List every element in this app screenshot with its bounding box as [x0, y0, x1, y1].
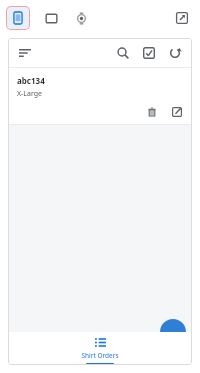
staticText: abc134	[17, 75, 45, 86]
button[interactable]: Phone device	[7, 7, 29, 29]
staticText: Shirt Orders	[81, 351, 119, 360]
button[interactable]: Tablet device	[40, 7, 62, 29]
button[interactable]: Delete	[143, 103, 161, 121]
button[interactable]: Select all	[138, 42, 160, 64]
button[interactable]: Edit	[168, 103, 186, 121]
button[interactable]: Shirt Orders	[64, 332, 136, 365]
button[interactable]: Refresh	[164, 42, 186, 64]
button[interactable]: Sort	[15, 43, 35, 63]
button[interactable]: Open in new window	[171, 7, 193, 29]
button[interactable]: Wear device	[70, 7, 92, 29]
button[interactable]: Search	[112, 42, 134, 64]
staticText: X-Large	[17, 89, 43, 99]
button[interactable]: abc134	[8, 68, 192, 124]
button[interactable]: Add order	[160, 319, 186, 345]
